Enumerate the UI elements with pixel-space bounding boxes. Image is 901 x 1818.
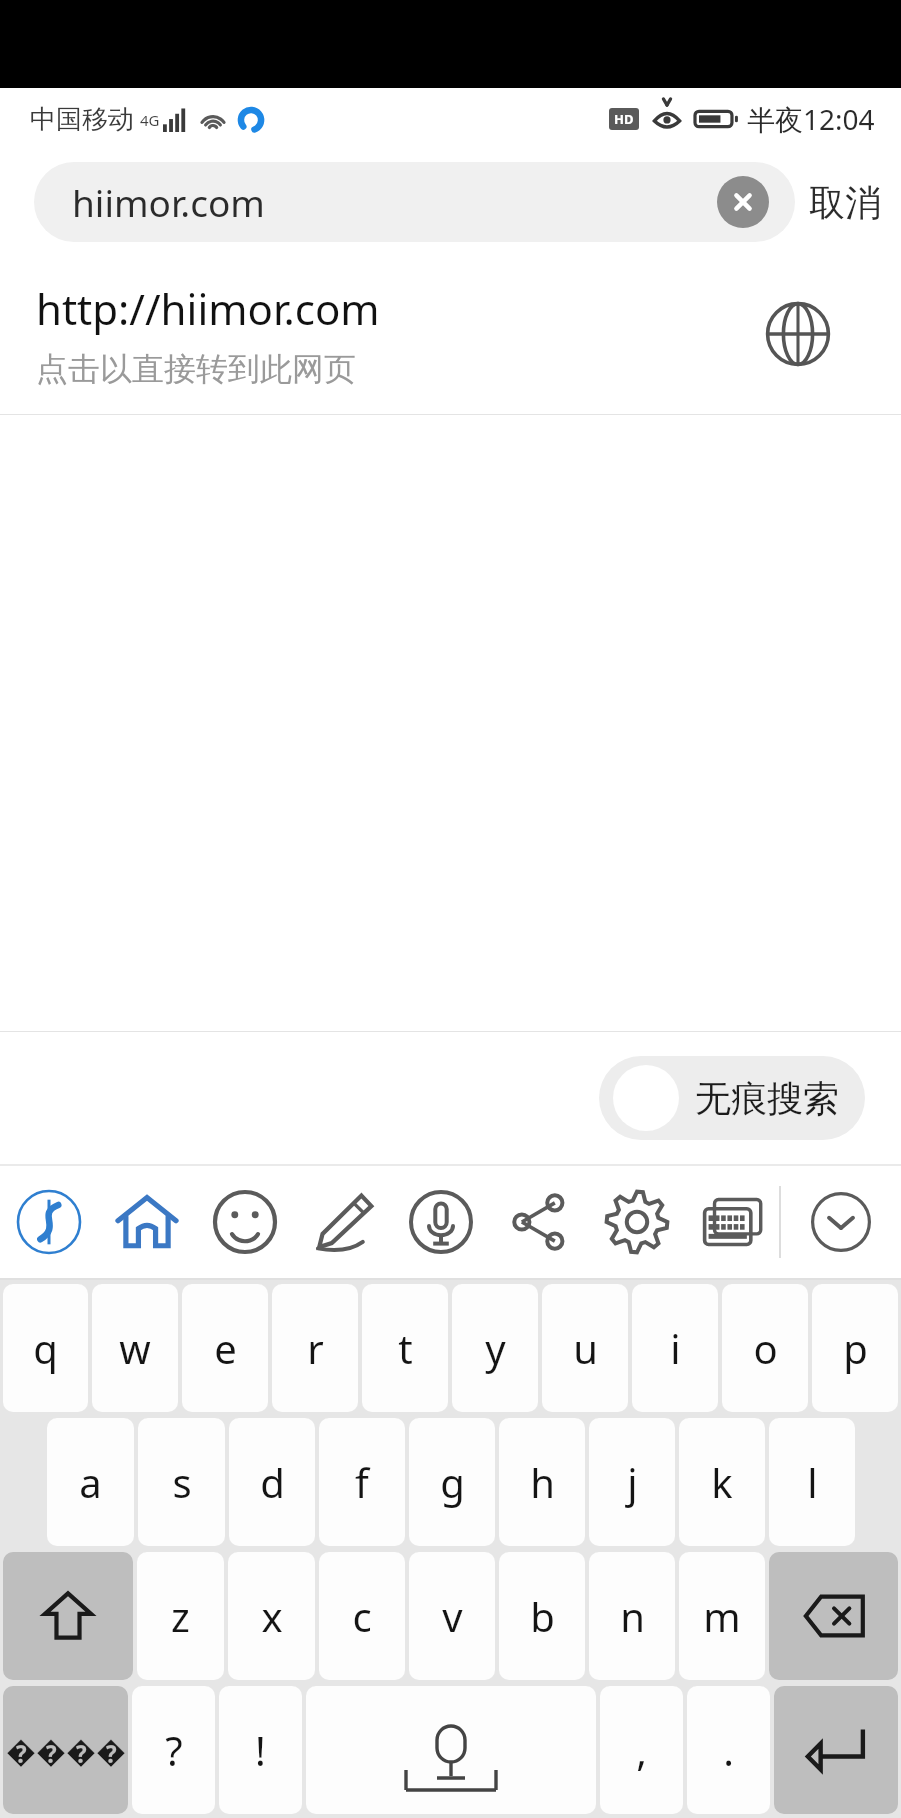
button[interactable]: Share [490,1166,588,1278]
button[interactable]: Handwriting [294,1166,392,1278]
button[interactable]: f [319,1418,405,1546]
staticText: ! [255,1723,266,1777]
staticText: y [485,1321,506,1375]
button[interactable]: w [92,1284,178,1412]
button[interactable]: Shift [3,1552,133,1680]
button[interactable]: d [229,1418,315,1546]
staticText: r [307,1321,324,1375]
staticText: q [33,1321,58,1375]
staticText: HD [614,110,634,128]
staticText: b [530,1589,555,1643]
button[interactable]: hiimor.com [34,162,795,242]
button[interactable]: Open web page [757,293,839,375]
staticText: 半夜12:04 [747,100,875,138]
staticText: 4G [140,110,160,130]
button[interactable]: c [319,1552,405,1680]
button[interactable]: y [452,1284,538,1412]
staticText: v [442,1589,463,1643]
staticText: h [530,1455,555,1509]
button[interactable]: 取消 [809,162,881,242]
staticText: p [843,1321,868,1375]
button[interactable]: u [542,1284,628,1412]
staticText: . [723,1723,734,1777]
staticText: 取消 [809,180,881,225]
button[interactable]: Clear [717,176,769,228]
button[interactable]: a [47,1418,134,1546]
button[interactable]: k [679,1418,765,1546]
staticText: l [807,1455,818,1509]
staticText: 中国移动 [30,103,134,136]
button[interactable]: Emoji [196,1166,294,1278]
button[interactable]: Enter [774,1686,898,1814]
staticText: k [711,1455,733,1509]
button[interactable]: Voice input [392,1166,490,1278]
button[interactable]: i [632,1284,718,1412]
staticText: o [753,1321,778,1375]
button[interactable]: e [182,1284,268,1412]
button[interactable]: g [409,1418,495,1546]
staticText: s [172,1455,192,1509]
button[interactable]: v [409,1552,495,1680]
staticText: n [620,1589,645,1643]
button[interactable]: h [499,1418,585,1546]
staticText: 点击以直接转到此网页 [36,349,356,389]
staticText: ���� [6,1730,126,1771]
button[interactable]: s [138,1418,225,1546]
staticText: t [398,1321,413,1375]
button[interactable]: 无痕搜索 [599,1056,865,1140]
button[interactable]: l [769,1418,855,1546]
staticText: g [440,1455,465,1509]
button[interactable]: http://hiimor.com [0,254,901,414]
staticText: w [119,1321,151,1375]
staticText: a [79,1455,102,1509]
button[interactable]: x [228,1552,315,1680]
button[interactable]: z [137,1552,224,1680]
button[interactable]: Hide keyboard [781,1166,901,1278]
button[interactable]: Switch language [3,1686,128,1814]
button[interactable]: Settings [588,1166,686,1278]
button[interactable]: q [3,1284,88,1412]
staticText: e [214,1321,237,1375]
staticText: http://hiimor.com [36,280,380,337]
button[interactable]: Backspace [769,1552,898,1680]
staticText: 无痕搜索 [695,1076,839,1121]
staticText: z [171,1589,190,1643]
staticText: u [573,1321,598,1375]
staticText: , [636,1723,647,1777]
button[interactable]: m [679,1552,765,1680]
button[interactable]: r [272,1284,358,1412]
staticText: f [355,1455,369,1509]
staticText: j [627,1455,638,1509]
button[interactable]: n [589,1552,675,1680]
staticText: c [352,1589,372,1643]
staticText: x [261,1589,283,1643]
button[interactable]: Input method [0,1166,98,1278]
button[interactable]: o [722,1284,808,1412]
staticText: hiimor.com [72,177,717,227]
button[interactable]: b [499,1552,585,1680]
staticText: ? [165,1723,183,1777]
staticText: i [670,1321,681,1375]
button[interactable]: Keyboard layout [686,1166,779,1278]
button[interactable]: ? [132,1686,215,1814]
button[interactable]: Space / voice [306,1686,596,1814]
button[interactable]: Home [98,1166,196,1278]
button[interactable]: ! [219,1686,302,1814]
button[interactable]: p [812,1284,898,1412]
staticText: d [260,1455,285,1509]
button[interactable]: j [589,1418,675,1546]
button[interactable]: , [600,1686,683,1814]
button[interactable]: t [362,1284,448,1412]
staticText: m [703,1589,741,1643]
button[interactable]: . [687,1686,770,1814]
